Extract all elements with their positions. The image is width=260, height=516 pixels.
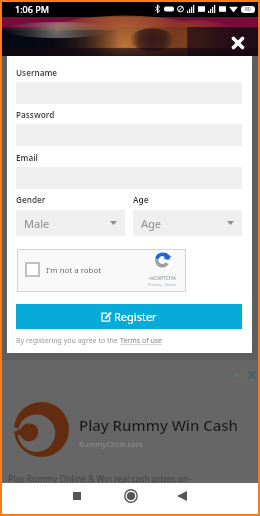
staticText: 80 (245, 6, 251, 13)
button[interactable]: Recents (64, 483, 90, 509)
button[interactable]: Home (118, 483, 144, 509)
button[interactable]: Play Rummy Win Cash (0, 360, 260, 483)
staticText: Password (16, 109, 55, 120)
staticText: Username (16, 67, 58, 78)
button[interactable]: Terms of use (120, 336, 163, 346)
staticText: Register (114, 309, 157, 324)
button[interactable]: Close (228, 33, 248, 53)
staticText: By registering you agree to the (16, 336, 120, 346)
button[interactable]: Male (16, 210, 125, 236)
staticText: Play Rummy Online & Win real cash prizes… (8, 473, 191, 485)
button[interactable]: I'm not a robot (17, 249, 186, 292)
button[interactable]: Register (16, 304, 242, 329)
staticText: reCAPTCHA (149, 275, 176, 282)
staticText: Age (141, 216, 161, 231)
staticText: 1:06 PM (15, 3, 49, 15)
staticText: Male (24, 216, 50, 231)
button[interactable]: Age (133, 210, 242, 236)
staticText: RummyCircle.com (79, 439, 143, 449)
staticText: Email (16, 152, 38, 163)
button[interactable]: Back (169, 483, 195, 509)
staticText: Privacy - Terms (148, 282, 177, 287)
staticText: Play Rummy Win Cash (79, 415, 238, 435)
staticText: I'm not a robot (46, 265, 102, 276)
staticText: Age (133, 194, 149, 205)
staticText: Gender (16, 194, 46, 205)
